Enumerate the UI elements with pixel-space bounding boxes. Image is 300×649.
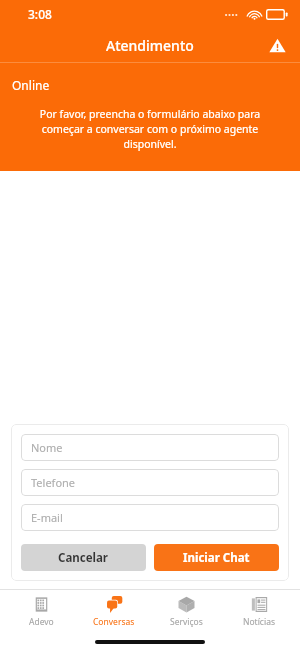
staticText: Nome: [31, 440, 63, 455]
staticText: Online: [12, 77, 50, 93]
staticText: 3:08: [28, 6, 52, 22]
staticText: Conversas: [93, 616, 135, 628]
button[interactable]: Adevo: [10, 594, 72, 630]
staticText: Por favor, preencha o formulário abaixo …: [22, 107, 278, 151]
staticText: E-mail: [31, 510, 63, 525]
button[interactable]: Nome: [21, 434, 279, 461]
staticText: Atendimento: [106, 36, 194, 55]
staticText: Serviços: [170, 616, 203, 628]
button[interactable]: Cancelar: [21, 544, 146, 571]
staticText: Iniciar Chat: [183, 550, 250, 566]
button[interactable]: Conversas: [83, 594, 145, 630]
staticText: Cancelar: [58, 550, 109, 566]
staticText: Telefone: [31, 475, 76, 490]
staticText: Adevo: [29, 616, 54, 628]
staticText: Notícias: [243, 616, 275, 628]
button[interactable]: Iniciar Chat: [154, 544, 279, 571]
button[interactable]: E-mail: [21, 504, 279, 531]
button[interactable]: Notícias: [228, 594, 290, 630]
button[interactable]: Serviços: [155, 594, 217, 630]
button[interactable]: Alerta: [262, 30, 292, 60]
button[interactable]: Telefone: [21, 469, 279, 496]
